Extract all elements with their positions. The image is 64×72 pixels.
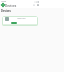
button[interactable]: More options	[36, 3, 39, 6]
button[interactable]: Account	[32, 3, 35, 6]
staticText: Devices	[1, 9, 11, 13]
staticText: 10:30	[1, 0, 7, 3]
button[interactable]: Nest Hub	[2, 16, 38, 26]
button[interactable]: Set up	[11, 22, 17, 24]
staticText: Devices	[5, 4, 17, 8]
staticText: Nest Hub	[17, 17, 26, 20]
